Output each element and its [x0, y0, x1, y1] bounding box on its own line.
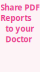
staticText: to your Doctor [5, 23, 34, 44]
staticText: Share PDF Reports [0, 2, 39, 23]
